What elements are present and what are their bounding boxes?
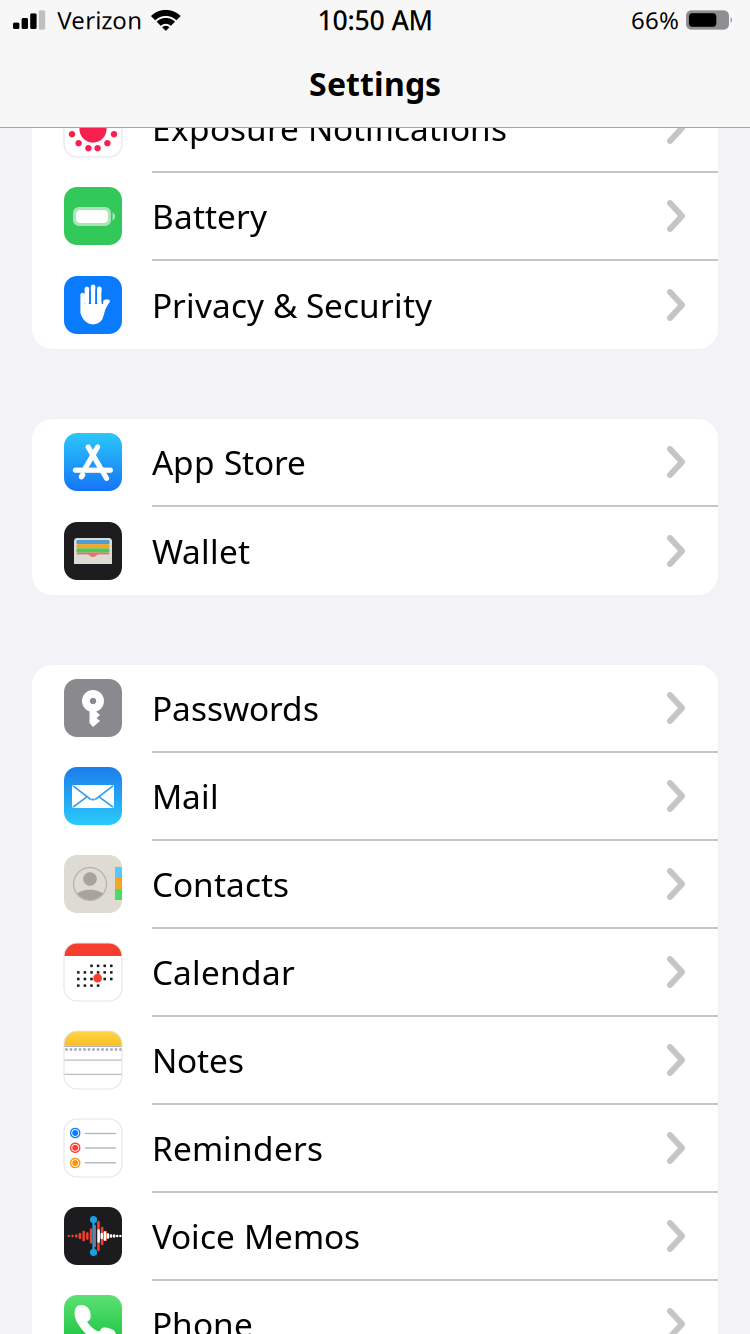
button[interactable]: Voice Memos [32, 1193, 718, 1281]
staticText: Contacts [152, 862, 289, 906]
button[interactable]: Reminders [32, 1105, 718, 1193]
staticText: Mail [152, 774, 219, 818]
button[interactable]: Exposure Notifications [32, 85, 718, 173]
staticText: Notes [152, 1038, 244, 1082]
staticText: Voice Memos [152, 1214, 360, 1258]
button[interactable]: Battery [32, 173, 718, 261]
staticText: Phone [152, 1302, 253, 1334]
staticText: Reminders [152, 1126, 323, 1170]
staticText: Exposure Notifications [152, 106, 507, 150]
button[interactable]: Contacts [32, 841, 718, 929]
button[interactable]: Passwords [32, 665, 718, 753]
button[interactable]: Wallet [32, 507, 718, 595]
staticText: Battery [152, 194, 267, 238]
staticText: Privacy & Security [152, 283, 432, 327]
staticText: Passwords [152, 686, 319, 730]
staticText: Calendar [152, 950, 295, 994]
button[interactable]: Phone [32, 1281, 718, 1334]
staticText: 66% [631, 4, 679, 36]
button[interactable]: Notes [32, 1017, 718, 1105]
staticText: Settings [309, 62, 441, 105]
button[interactable]: Privacy & Security [32, 261, 718, 349]
staticText: App Store [152, 440, 306, 484]
button[interactable]: Calendar [32, 929, 718, 1017]
button[interactable]: App Store [32, 419, 718, 507]
staticText: 10:50 AM [317, 2, 432, 38]
button[interactable]: Mail [32, 753, 718, 841]
staticText: Wallet [152, 529, 250, 573]
staticText: Verizon [57, 4, 142, 36]
